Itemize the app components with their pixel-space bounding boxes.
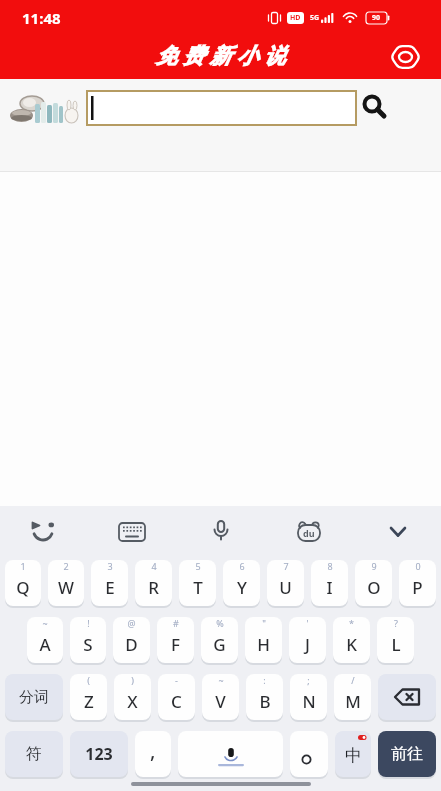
staticText: 7	[283, 560, 289, 572]
button[interactable]: 中	[335, 731, 371, 777]
button[interactable]: D	[113, 617, 150, 663]
button[interactable]: L	[377, 617, 414, 663]
staticText: ~	[42, 617, 48, 629]
button[interactable]: Q	[5, 560, 41, 606]
button[interactable]: I	[311, 560, 348, 606]
button[interactable]	[290, 731, 328, 777]
button[interactable]	[378, 674, 436, 720]
staticText: 4	[151, 560, 157, 572]
button[interactable]: du	[294, 517, 324, 547]
staticText: X	[127, 690, 138, 713]
staticText: 符	[26, 744, 42, 764]
button[interactable]	[28, 517, 58, 547]
button[interactable]: Z	[70, 674, 107, 720]
staticText: ,	[150, 737, 156, 764]
staticText: W	[58, 576, 74, 599]
button[interactable]: A	[27, 617, 63, 663]
button[interactable]: M	[334, 674, 371, 720]
staticText: 8	[327, 560, 333, 572]
button[interactable]: K	[333, 617, 370, 663]
staticText: ~	[218, 674, 224, 686]
staticText: 6	[239, 560, 245, 572]
staticText: U	[279, 576, 292, 599]
button[interactable]: 前往	[378, 731, 436, 777]
button[interactable]	[206, 517, 236, 547]
staticText: C	[171, 690, 182, 713]
staticText: 5	[195, 560, 201, 572]
staticText: F	[171, 633, 180, 656]
button[interactable]: E	[91, 560, 128, 606]
staticText: S	[83, 633, 93, 656]
staticText: M	[345, 690, 361, 713]
button[interactable]: V	[202, 674, 239, 720]
button[interactable]	[178, 731, 283, 777]
staticText: 2	[63, 560, 69, 572]
staticText: 中	[345, 745, 362, 766]
staticText: :	[263, 674, 266, 686]
staticText: #	[173, 617, 179, 629]
staticText: K	[346, 633, 357, 656]
staticText: P	[412, 576, 423, 599]
button[interactable]: N	[290, 674, 327, 720]
staticText: '	[306, 617, 309, 629]
button[interactable]: O	[355, 560, 392, 606]
button[interactable]: J	[289, 617, 326, 663]
button[interactable]: X	[114, 674, 151, 720]
button[interactable]: B	[246, 674, 283, 720]
staticText: G	[213, 633, 226, 656]
staticText: T	[193, 576, 203, 599]
staticText: %	[216, 617, 224, 629]
staticText: 免费新小说	[153, 43, 288, 69]
button[interactable]: W	[48, 560, 84, 606]
staticText: Q	[16, 576, 30, 599]
button[interactable]	[383, 517, 413, 547]
staticText: D	[125, 633, 138, 656]
staticText: @	[127, 617, 136, 629]
staticText: 分词	[19, 688, 49, 707]
staticText: E	[105, 576, 115, 599]
button[interactable]: 123	[70, 731, 128, 777]
staticText: 5G	[310, 13, 320, 23]
button[interactable]: Y	[223, 560, 260, 606]
button[interactable]	[362, 94, 388, 120]
button[interactable]: R	[135, 560, 172, 606]
staticText: (	[87, 674, 90, 686]
staticText: 11:48	[22, 8, 61, 28]
staticText: "	[262, 617, 266, 629]
staticText: I	[326, 576, 333, 599]
button[interactable]	[117, 517, 147, 547]
staticText: ?	[394, 617, 398, 629]
staticText: A	[39, 633, 51, 656]
staticText: *	[349, 617, 354, 629]
staticText: 前往	[391, 744, 423, 764]
staticText: Z	[84, 690, 94, 713]
staticText: 90	[372, 13, 381, 23]
staticText: 0	[415, 560, 421, 572]
button[interactable]: T	[179, 560, 216, 606]
staticText: Y	[237, 576, 247, 599]
button[interactable]: G	[201, 617, 238, 663]
button[interactable]: H	[245, 617, 282, 663]
button[interactable]: F	[157, 617, 194, 663]
button[interactable]	[390, 45, 421, 69]
staticText: J	[305, 633, 310, 656]
staticText: du	[303, 527, 315, 539]
staticText: 3	[107, 560, 113, 572]
staticText: R	[148, 576, 159, 599]
button[interactable]: S	[70, 617, 106, 663]
button[interactable]: C	[158, 674, 195, 720]
staticText: L	[391, 633, 401, 656]
button[interactable]: 免费新小说	[153, 43, 288, 69]
button[interactable]: P	[399, 560, 436, 606]
button[interactable]: U	[267, 560, 304, 606]
button[interactable]: 符	[5, 731, 63, 777]
button[interactable]	[87, 91, 356, 125]
button[interactable]: 分词	[5, 674, 63, 720]
staticText: V	[215, 690, 226, 713]
staticText: 1	[20, 560, 26, 572]
staticText: !	[87, 617, 90, 629]
staticText: B	[259, 690, 271, 713]
staticText: H	[257, 633, 270, 656]
staticText: 9	[371, 560, 377, 572]
button[interactable]: ,	[135, 731, 171, 777]
